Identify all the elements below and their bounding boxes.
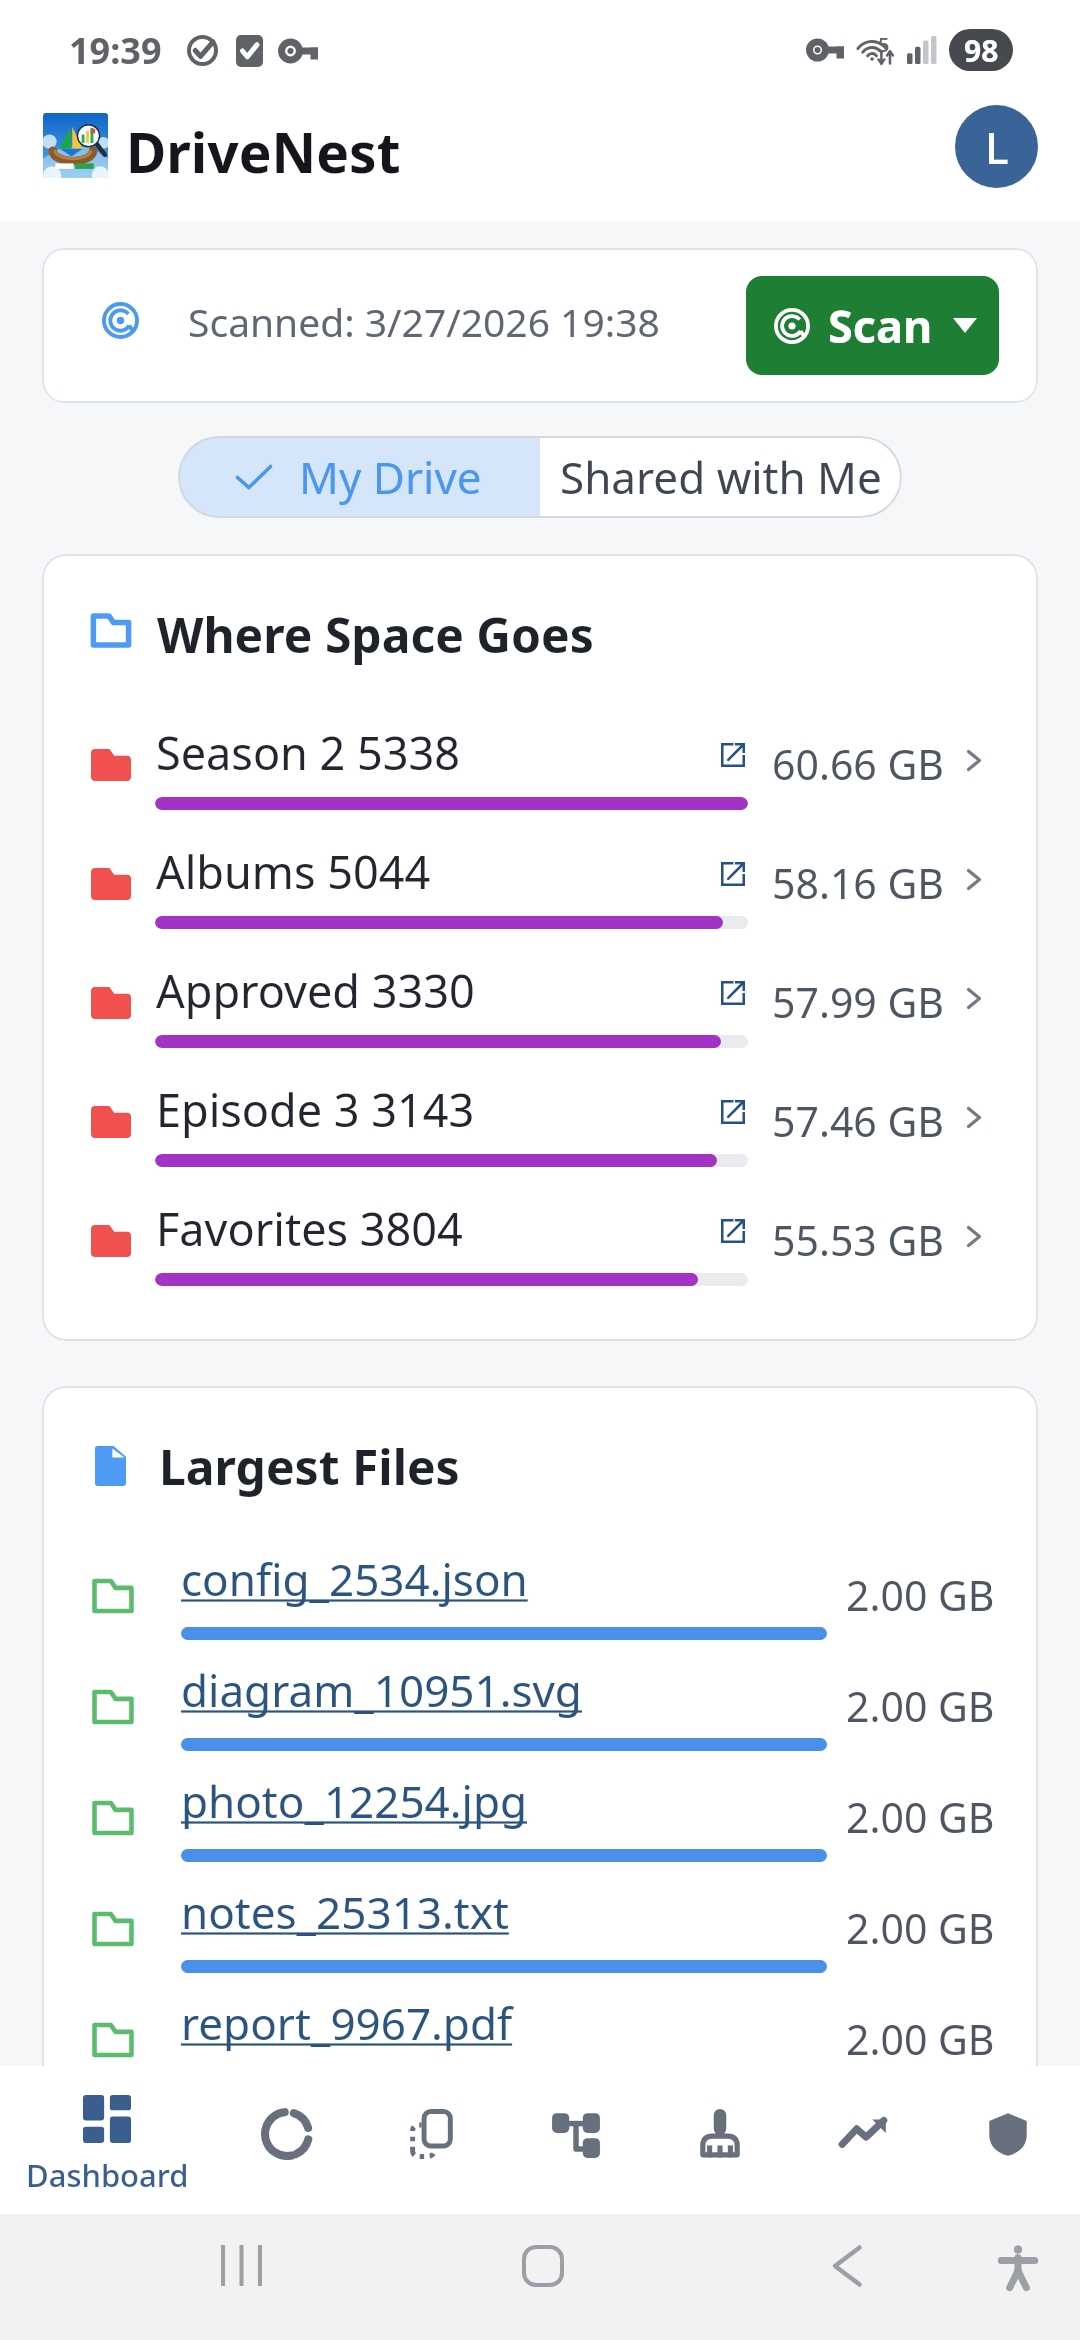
staticText: 5 [878, 31, 890, 58]
button[interactable]: Security [936, 2066, 1080, 2214]
other: Recents [221, 2245, 262, 2286]
staticText: Largest Files [159, 1434, 460, 1499]
staticText: Albums 5044 [156, 841, 431, 902]
staticText: L [985, 117, 1009, 177]
staticText: 60.66 GB [772, 736, 944, 792]
button[interactable]: Albums 5044 [42, 841, 1038, 960]
button[interactable]: Duplicates [359, 2066, 504, 2214]
staticText: Favorites 3804 [156, 1198, 463, 1259]
other: Home [522, 2245, 564, 2287]
staticText: Shared with Me [560, 447, 882, 507]
staticText: DriveNest [126, 114, 401, 189]
button[interactable]: Approved 3330 [42, 960, 1038, 1079]
button[interactable]: report_9967.pdf [42, 1985, 1038, 2096]
staticText: 2.00 GB [846, 1789, 995, 1845]
staticText: 58.16 GB [772, 855, 944, 911]
staticText: 55.53 GB [772, 1212, 944, 1268]
staticText: My Drive [299, 447, 482, 507]
staticText: Scan [828, 295, 933, 356]
staticText: Scanned: 3/27/2026 19:38 [188, 295, 660, 348]
staticText: Season 2 5338 [156, 722, 461, 783]
staticText: report_9967.pdf [181, 1993, 513, 2053]
button[interactable]: Dashboard [0, 2066, 214, 2214]
button[interactable]: config_2534.json [42, 1541, 1038, 1652]
button[interactable]: Trends [792, 2066, 936, 2214]
button[interactable]: Favorites 3804 [42, 1198, 1038, 1317]
button[interactable]: Scan [746, 276, 999, 375]
button[interactable]: notes_25313.txt [42, 1874, 1038, 1985]
button[interactable]: diagram_10951.svg [42, 1652, 1038, 1763]
staticText: 2.00 GB [846, 1678, 995, 1734]
staticText: 57.46 GB [772, 1093, 944, 1149]
button[interactable]: photo_12254.jpg [42, 1763, 1038, 1874]
button[interactable]: Episode 3 3143 [42, 1079, 1038, 1198]
staticText: 57.99 GB [772, 974, 944, 1030]
button[interactable]: Cleanup [648, 2066, 792, 2214]
other: Accessibility [999, 2244, 1037, 2290]
button[interactable]: Folder tree [504, 2066, 648, 2214]
staticText: Dashboard [26, 2154, 189, 2196]
staticText: 19:39 [69, 26, 162, 75]
staticText: notes_25313.txt [181, 1882, 509, 1942]
button[interactable]: Season 2 5338 [42, 722, 1038, 841]
staticText: Where Space Goes [157, 602, 594, 667]
staticText: Approved 3330 [156, 960, 475, 1021]
button[interactable]: Scan progress [214, 2066, 359, 2214]
staticText: 98 [964, 30, 999, 71]
staticText: Episode 3 3143 [156, 1079, 475, 1140]
button[interactable]: Shared with Me [540, 436, 902, 518]
button[interactable]: My Drive [178, 436, 540, 518]
staticText: diagram_10951.svg [181, 1660, 582, 1720]
button[interactable]: Account [955, 105, 1038, 188]
staticText: 2.00 GB [846, 2011, 995, 2067]
staticText: 2.00 GB [846, 1900, 995, 1956]
staticText: config_2534.json [181, 1549, 528, 1609]
staticText: photo_12254.jpg [181, 1771, 528, 1831]
staticText: 2.00 GB [846, 1567, 995, 1623]
other: Back [832, 2245, 862, 2287]
